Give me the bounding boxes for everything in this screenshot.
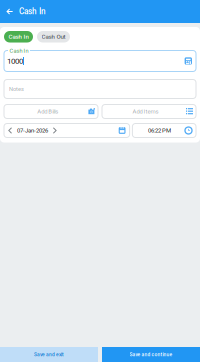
staticText: 06:22 PM xyxy=(148,127,171,134)
staticText: Add Bills xyxy=(37,108,58,115)
button[interactable]: Pick time xyxy=(183,124,193,137)
staticText: 1000 xyxy=(7,56,23,66)
button[interactable]: Save and continue xyxy=(102,347,200,362)
button[interactable]: Next day xyxy=(51,124,59,137)
button[interactable]: Pick date xyxy=(117,124,127,137)
button[interactable]: Save and exit xyxy=(0,347,98,362)
button[interactable]: Cash In xyxy=(4,31,33,42)
staticText: Notes xyxy=(9,86,24,92)
staticText: Cash Out xyxy=(41,33,65,40)
staticText: Save and exit xyxy=(34,352,64,357)
button[interactable]: Previous day xyxy=(6,124,14,137)
staticText: Cash In xyxy=(9,47,28,54)
button[interactable]: Cash Out xyxy=(37,31,70,42)
button[interactable]: Add Bills xyxy=(4,104,98,118)
button[interactable]: Add Items xyxy=(102,104,196,118)
staticText: Save and continue xyxy=(129,352,172,357)
staticText: Cash In xyxy=(19,7,46,16)
button[interactable]: Back xyxy=(3,0,16,23)
staticText: Add Items xyxy=(132,108,158,115)
staticText: 07-Jan-2026 xyxy=(17,127,48,134)
staticText: Cash In xyxy=(8,33,28,40)
